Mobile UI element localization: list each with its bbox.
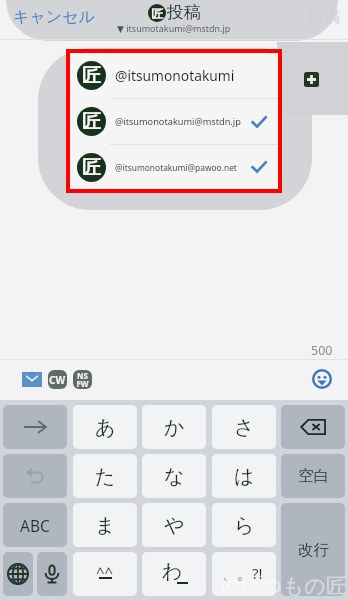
staticText: 匠: [82, 64, 101, 88]
button[interactable]: 匠: [70, 145, 278, 189]
button[interactable]: Add account: [304, 72, 319, 87]
staticText: 匠: [82, 110, 101, 134]
button[interactable]: や: [142, 503, 206, 547]
staticText: 500: [311, 342, 333, 359]
staticText: た: [95, 464, 116, 489]
button[interactable]: CW: [48, 370, 67, 389]
button[interactable]: ま: [73, 503, 137, 547]
button[interactable]: わ: [142, 552, 206, 596]
button[interactable]: Emoji: [312, 369, 332, 389]
staticText: ま: [95, 513, 116, 538]
staticText: @いつもの匠: [221, 571, 347, 600]
staticText: 匠: [151, 6, 163, 21]
staticText: ▼ itsumotakumi@mstdn.jp: [117, 22, 231, 34]
staticText: か: [164, 415, 185, 440]
button[interactable]: 匠: [70, 99, 278, 144]
staticText: ^^: [96, 562, 114, 582]
staticText: な: [164, 464, 185, 489]
other: Voice input: [42, 564, 62, 584]
staticText: @itsumonotakumi: [115, 66, 235, 85]
button[interactable]: あ: [73, 405, 137, 449]
staticText: @itsumonotakumi@mstdn.jp: [115, 115, 241, 128]
staticText: 投稿: [167, 2, 201, 23]
staticText: 改行: [298, 540, 329, 560]
staticText: NS FW: [76, 370, 89, 389]
staticText: 空白: [298, 466, 329, 486]
button[interactable]: Undo: [3, 454, 67, 498]
button[interactable]: Voice input: [37, 552, 67, 596]
button[interactable]: 匠: [70, 53, 278, 98]
button[interactable]: キャンセル: [13, 7, 95, 27]
staticText: さ: [234, 415, 255, 440]
button[interactable]: た: [73, 454, 137, 498]
button[interactable]: 空白: [281, 454, 345, 498]
staticText: 匠: [82, 156, 101, 180]
button[interactable]: 改行: [281, 503, 345, 596]
other: Backspace: [299, 418, 327, 436]
other: Undo: [25, 466, 45, 486]
staticText: 、。?!: [222, 563, 263, 583]
staticText: や: [164, 513, 185, 538]
button[interactable]: 投稿: [308, 7, 340, 27]
staticText: は: [234, 464, 255, 489]
staticText: わ: [162, 559, 183, 584]
staticText: @itsumonotakumi@pawoo.net: [115, 162, 237, 173]
button[interactable]: ABC: [3, 503, 67, 547]
button[interactable]: Language: [3, 552, 33, 596]
button[interactable]: ら: [212, 503, 276, 547]
other: Language: [7, 563, 29, 585]
staticText: ABC: [20, 515, 50, 536]
staticText: CW: [49, 373, 66, 387]
button[interactable]: Backspace: [281, 405, 345, 449]
button[interactable]: さ: [212, 405, 276, 449]
button[interactable]: 、。?!: [212, 552, 276, 596]
staticText: ら: [234, 513, 255, 538]
button[interactable]: NS FW: [73, 370, 92, 389]
other: Next: [22, 420, 48, 434]
staticText: あ: [95, 415, 116, 440]
button[interactable]: か: [142, 405, 206, 449]
button[interactable]: ^^: [73, 552, 137, 596]
button[interactable]: Visibility: [22, 372, 42, 387]
button[interactable]: Next: [3, 405, 67, 449]
button[interactable]: は: [212, 454, 276, 498]
button[interactable]: な: [142, 454, 206, 498]
